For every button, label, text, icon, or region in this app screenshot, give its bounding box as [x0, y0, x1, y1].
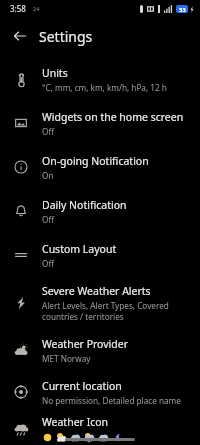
staticText: Settings [39, 27, 93, 46]
staticText: countries / territories [42, 311, 124, 322]
staticText: Off [42, 258, 55, 269]
staticText: 3:58 [10, 3, 26, 14]
button[interactable]: On-going Notification [0, 145, 200, 189]
staticText: Daily Notification [42, 198, 127, 212]
button[interactable]: Units [0, 57, 200, 101]
staticText: Severe Weather Alerts [42, 284, 151, 298]
staticText: Weather Icon [42, 415, 109, 429]
staticText: Units [42, 66, 68, 80]
button[interactable]: Weather Provider [0, 329, 200, 371]
staticText: Alert Levels, Alert Types, Covered [42, 300, 169, 311]
staticText: On-going Notification [42, 154, 149, 168]
button[interactable]: Severe Weather Alerts [0, 277, 200, 329]
button[interactable]: Current location [0, 371, 200, 413]
staticText: On [42, 170, 54, 181]
staticText: No permission, Detailed place name [42, 395, 181, 406]
staticText: Off [42, 126, 55, 137]
staticText: 24 [33, 5, 40, 12]
staticText: Off [42, 214, 55, 225]
staticText: 53 [179, 6, 186, 13]
staticText: °C, mm, cm, km, km/h, hPa, 12 h [42, 82, 167, 93]
button[interactable]: Daily Notification [0, 189, 200, 233]
button[interactable]: Widgets on the home screen [0, 101, 200, 145]
button[interactable]: Back [5, 21, 35, 51]
staticText: Weather Provider [42, 337, 129, 351]
staticText: Custom Layout [42, 242, 117, 256]
staticText: Widgets on the home screen [42, 110, 184, 124]
staticText: Current location [42, 379, 122, 393]
button[interactable]: Custom Layout [0, 233, 200, 277]
button[interactable]: Weather Icon [0, 413, 200, 445]
staticText: MET Norway [42, 353, 91, 364]
